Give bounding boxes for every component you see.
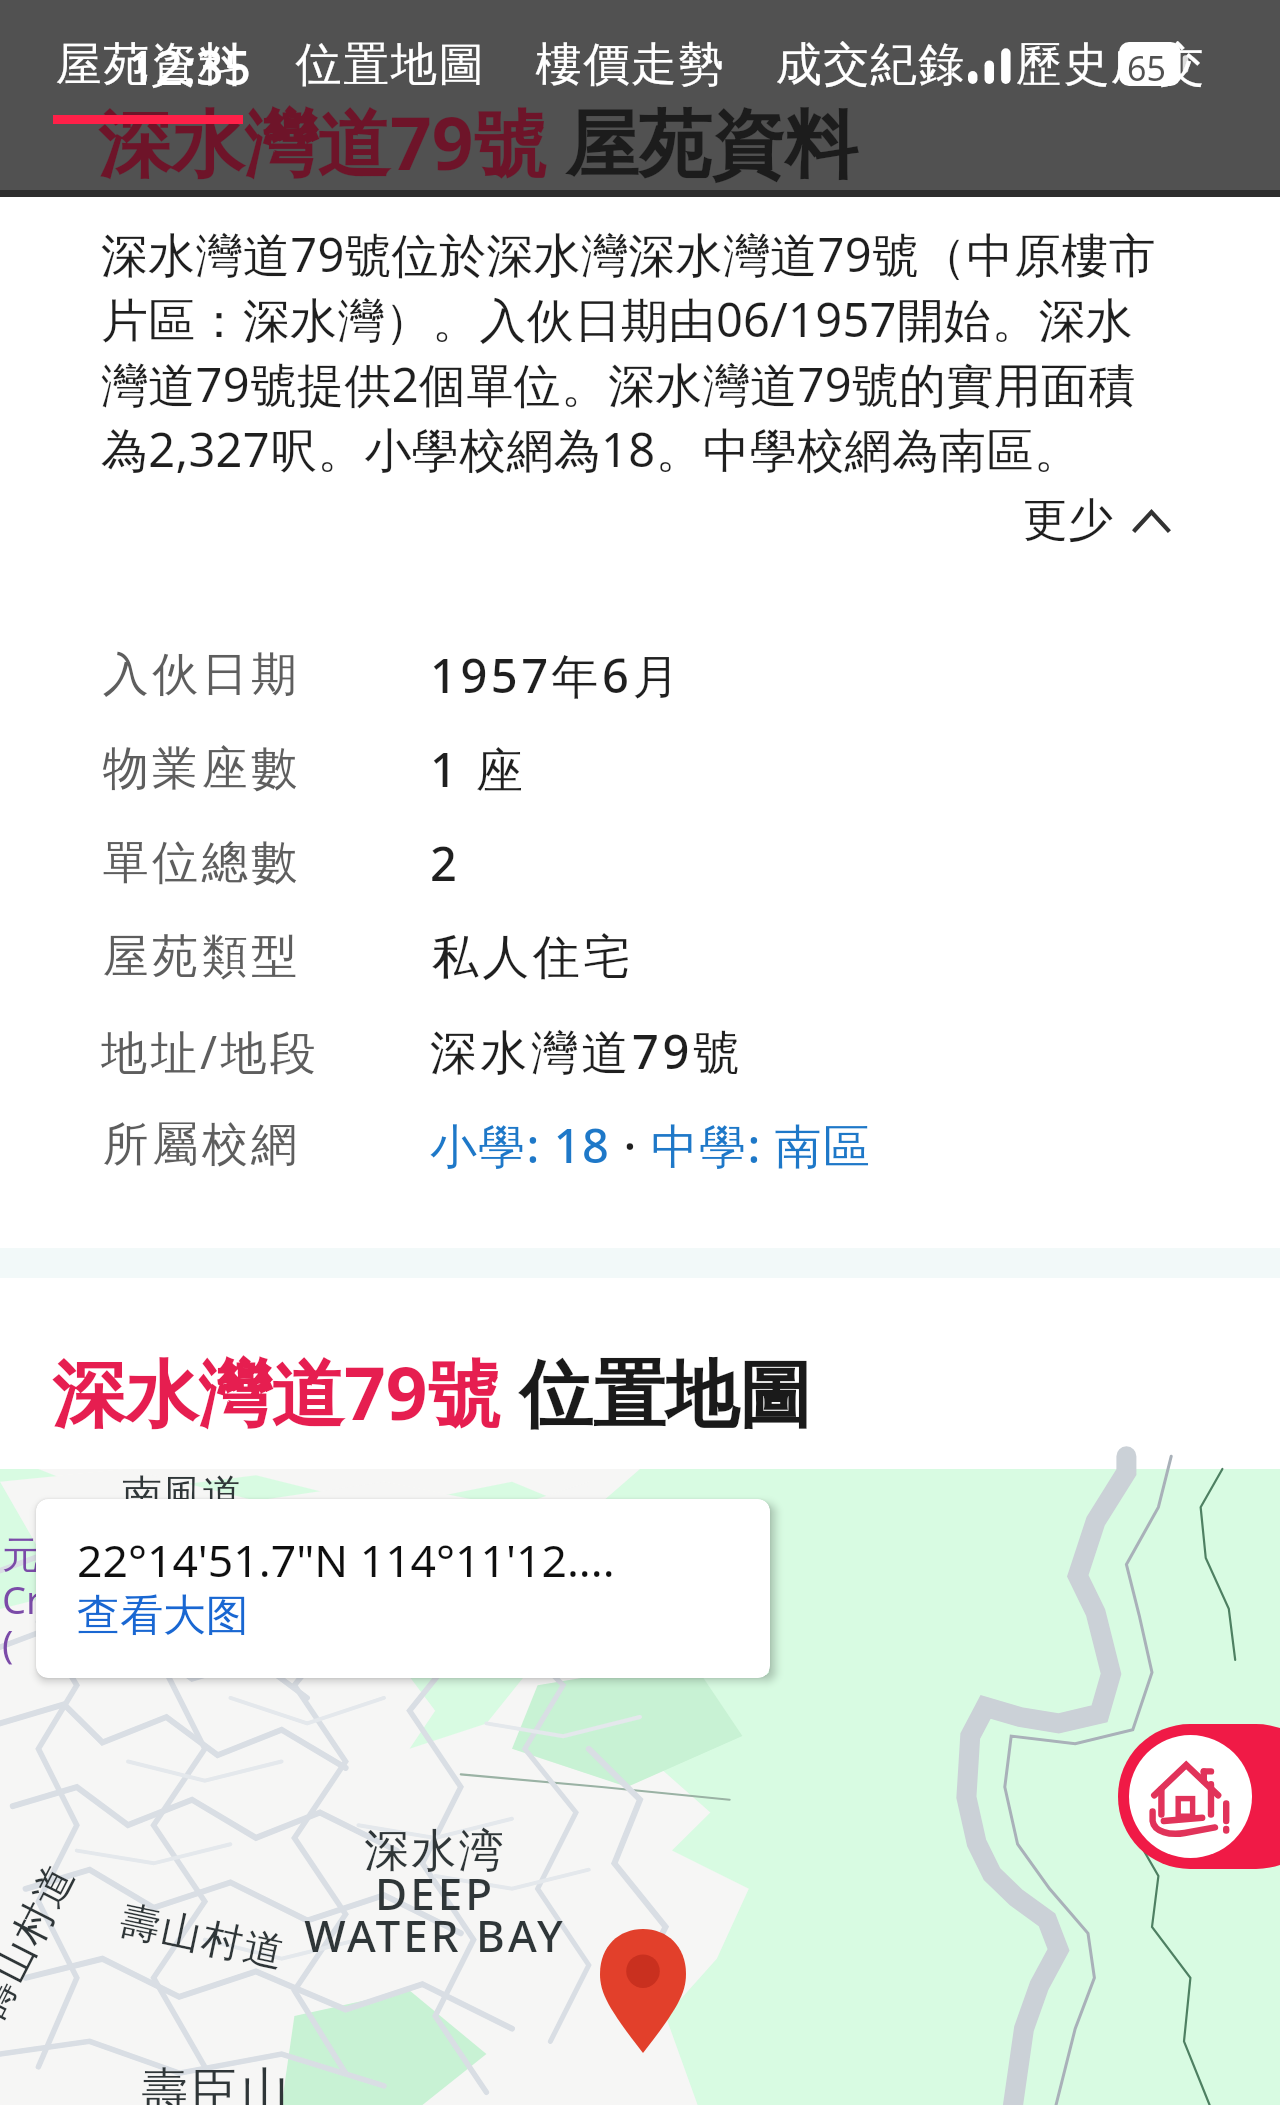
staticText: 屋苑類型	[101, 928, 299, 986]
staticText: 深水灣道79號 位置地圖	[52, 1342, 812, 1442]
staticText: 南風道	[122, 1469, 242, 1519]
staticText: 樓價走勢	[535, 36, 725, 94]
button[interactable]: 入伙日期	[0, 628, 1280, 722]
staticText: 私人住宅	[430, 928, 632, 987]
button[interactable]: 樓價走勢	[535, 36, 775, 94]
staticText: 2	[430, 831, 461, 895]
button[interactable]: 地址/地段	[0, 1004, 1280, 1098]
staticText: 壽臣山	[140, 2061, 290, 2105]
staticText: DEEP	[290, 1863, 580, 1923]
staticText: 深水湾	[290, 1823, 580, 1880]
staticText: 入伙日期	[101, 646, 299, 704]
staticText: 壽山村道	[0, 1856, 84, 2028]
staticText: WATER BAY	[290, 1905, 580, 1965]
staticText: 元 Cr (	[2, 1531, 42, 1669]
staticText: ·	[610, 1113, 651, 1177]
button[interactable]: 查看大图	[77, 1589, 249, 1643]
button[interactable]: 屋苑資料	[55, 36, 295, 94]
staticText: 深水灣道79號位於深水灣深水灣道79號（中原樓市片區：深水灣）。入伙日期由06/…	[101, 222, 1171, 481]
staticText: 單位總數	[101, 834, 299, 892]
staticText: 所屬校網	[101, 1116, 299, 1174]
staticText: 成交紀錄	[775, 36, 965, 94]
staticText: 位置地圖	[295, 36, 485, 94]
button[interactable]: 屋苑類型	[0, 910, 1280, 1004]
button[interactable]: 成交紀錄	[775, 36, 1015, 94]
button[interactable]: 位置地圖	[295, 36, 535, 94]
staticText: 22°14'51.7"N 114°11'12....	[77, 1529, 615, 1590]
button[interactable]: 22°14'51.7"N 114°11'12....	[36, 1499, 770, 1678]
button[interactable]: 中學: 南區	[651, 1113, 872, 1177]
button[interactable]: 小學: 18	[430, 1113, 610, 1177]
staticText: 查看大图	[77, 1589, 249, 1643]
staticText: 壽山村道	[115, 1894, 289, 1978]
button[interactable]: 單位總數	[0, 816, 1280, 910]
staticText: 深水灣道79號	[430, 1019, 744, 1083]
button[interactable]: 更少	[1015, 484, 1176, 557]
staticText: 更少	[1023, 492, 1113, 549]
button[interactable]: Contact property agent	[1118, 1724, 1280, 1869]
staticText: 1957年6月	[430, 643, 683, 707]
staticText: 1 座	[430, 737, 527, 801]
staticText: 地址/地段	[101, 1020, 320, 1083]
staticText: 12:35	[128, 34, 251, 99]
button[interactable]: 所屬校網	[0, 1098, 1280, 1192]
button[interactable]: 物業座數	[0, 722, 1280, 816]
staticText: 歷史成交	[1015, 36, 1205, 94]
staticText: 小學: 18	[430, 1113, 610, 1177]
staticText: 物業座數	[101, 740, 299, 798]
staticText: 屋苑資料	[55, 36, 245, 94]
staticText: 深水灣道79號 屋苑資料	[98, 92, 858, 192]
staticText: 65	[1127, 45, 1166, 89]
button[interactable]: 歷史成交	[1015, 36, 1255, 94]
staticText: 中學: 南區	[651, 1113, 872, 1177]
